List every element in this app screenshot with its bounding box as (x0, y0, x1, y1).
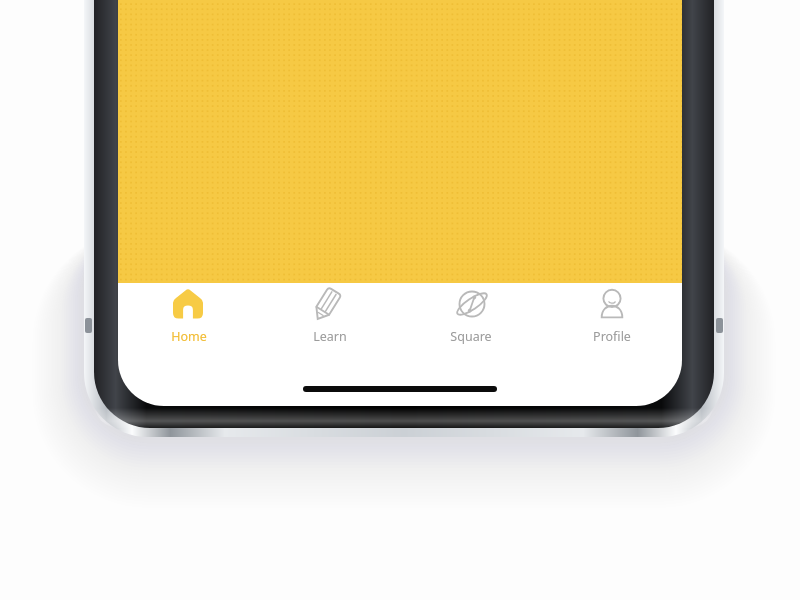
staticText: Square (450, 328, 492, 345)
button[interactable]: Home (118, 283, 259, 406)
button[interactable]: Learn (259, 283, 400, 406)
staticText: Profile (593, 328, 631, 345)
button[interactable]: Profile (541, 283, 682, 406)
button[interactable]: Square (400, 283, 541, 406)
staticText: Home (171, 328, 207, 345)
staticText: Learn (313, 328, 347, 345)
